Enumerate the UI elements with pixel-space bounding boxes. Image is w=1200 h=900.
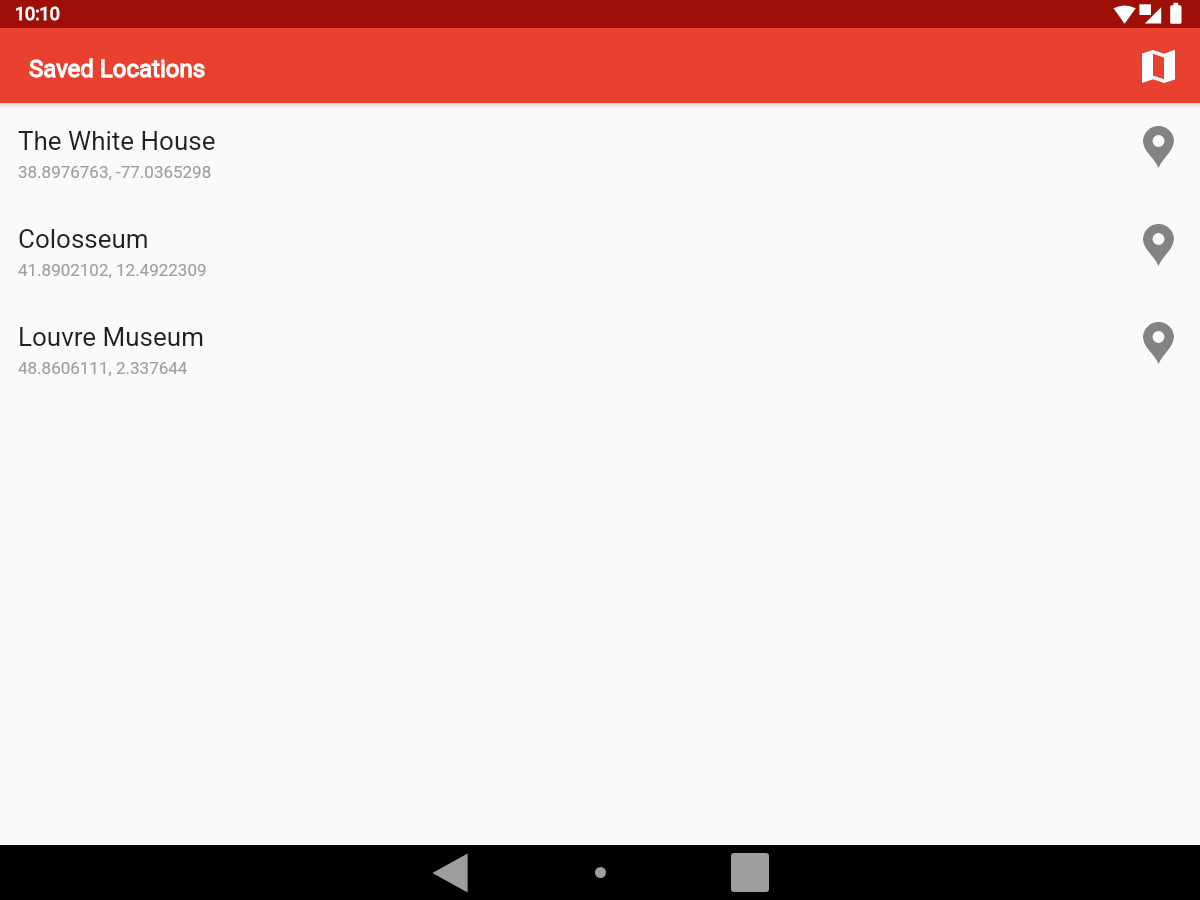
- button[interactable]: The White House: [0, 109, 1200, 207]
- staticText: 41.8902102, 12.4922309: [18, 260, 207, 280]
- button[interactable]: Recent apps: [675, 845, 825, 900]
- staticText: Saved Locations: [29, 55, 206, 83]
- other: Show on map: [1143, 126, 1174, 168]
- staticText: Colosseum: [18, 224, 149, 254]
- button[interactable]: Map: [1134, 42, 1182, 90]
- other: Show on map: [1143, 322, 1174, 364]
- button[interactable]: Back: [375, 845, 525, 900]
- staticText: The White House: [18, 126, 216, 156]
- other: Show on map: [1143, 224, 1174, 266]
- staticText: 10:10: [15, 3, 60, 24]
- button[interactable]: Louvre Museum: [0, 305, 1200, 403]
- button[interactable]: Colosseum: [0, 207, 1200, 305]
- button[interactable]: Home: [525, 845, 675, 900]
- staticText: Louvre Museum: [18, 322, 204, 352]
- staticText: 38.8976763, -77.0365298: [18, 162, 212, 182]
- staticText: 48.8606111, 2.337644: [18, 358, 188, 378]
